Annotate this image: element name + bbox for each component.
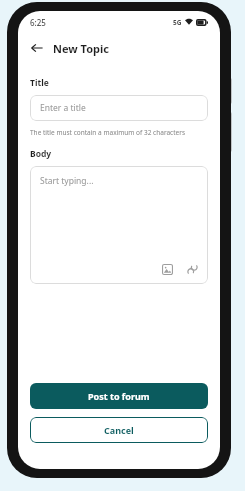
button[interactable]: Start typing... bbox=[30, 166, 208, 284]
button[interactable]: Insert image bbox=[159, 261, 175, 277]
staticText: Start typing... bbox=[40, 175, 94, 187]
staticText: Post to forum bbox=[88, 390, 150, 402]
button[interactable]: Cancel bbox=[30, 417, 208, 443]
staticText: Enter a title bbox=[40, 102, 86, 114]
staticText: The title must contain a maximum of 32 c… bbox=[30, 128, 186, 137]
button[interactable]: Enter a title bbox=[30, 95, 208, 121]
button[interactable]: Insert link bbox=[184, 261, 200, 277]
button[interactable]: Post to forum bbox=[30, 383, 208, 409]
staticText: 5G bbox=[173, 18, 182, 27]
staticText: Title bbox=[30, 77, 49, 89]
staticText: New Topic bbox=[53, 41, 109, 56]
button[interactable]: Back bbox=[26, 37, 48, 59]
staticText: Body bbox=[30, 148, 52, 160]
staticText: 6:25 bbox=[30, 17, 46, 28]
staticText: Cancel bbox=[104, 424, 134, 436]
